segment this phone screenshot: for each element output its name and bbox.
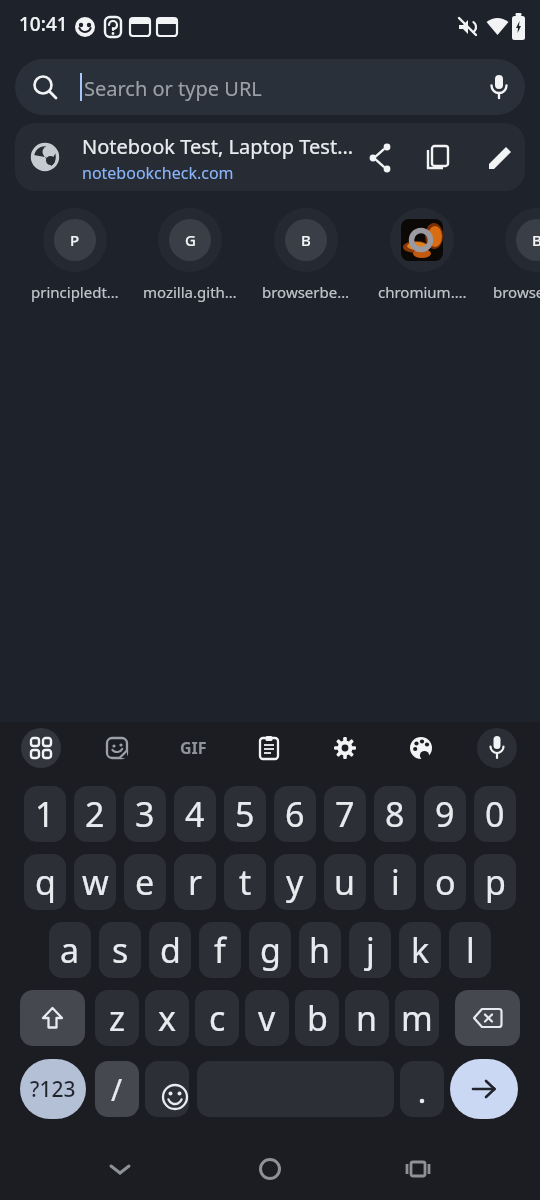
- button[interactable]: [394, 1145, 442, 1193]
- button[interactable]: v: [245, 990, 289, 1046]
- button[interactable]: f: [199, 922, 241, 978]
- button[interactable]: 7: [324, 786, 366, 842]
- staticText: 3: [135, 791, 155, 837]
- staticText: e: [135, 859, 155, 905]
- staticText: y: [286, 859, 304, 905]
- button[interactable]: s: [99, 922, 141, 978]
- staticText: f: [214, 927, 226, 973]
- staticText: principledt…: [31, 282, 119, 302]
- staticText: 6: [285, 791, 305, 837]
- staticText: 7: [335, 791, 355, 837]
- button[interactable]: ?123: [20, 1059, 86, 1119]
- staticText: P: [70, 230, 80, 250]
- button[interactable]: P: [18, 208, 132, 308]
- staticText: v: [258, 995, 276, 1041]
- button[interactable]: Search or type URL: [15, 59, 525, 115]
- button[interactable]: n: [345, 990, 389, 1046]
- button[interactable]: 2: [74, 786, 116, 842]
- button[interactable]: [455, 990, 520, 1046]
- button[interactable]: e: [124, 854, 166, 910]
- button[interactable]: k: [399, 922, 441, 978]
- button[interactable]: z: [95, 990, 139, 1046]
- button[interactable]: c: [195, 990, 239, 1046]
- button[interactable]: i: [374, 854, 416, 910]
- button[interactable]: [418, 138, 458, 178]
- staticText: u: [334, 859, 356, 905]
- button[interactable]: u: [324, 854, 366, 910]
- staticText: n: [356, 995, 378, 1041]
- button[interactable]: [480, 138, 520, 178]
- button[interactable]: [96, 1145, 144, 1193]
- button[interactable]: B: [249, 208, 363, 308]
- button[interactable]: /: [95, 1061, 139, 1117]
- button[interactable]: j: [349, 922, 391, 978]
- button[interactable]: 9: [424, 786, 466, 842]
- button[interactable]: o: [424, 854, 466, 910]
- button[interactable]: 8: [374, 786, 416, 842]
- button[interactable]: [400, 1061, 444, 1117]
- button[interactable]: 3: [124, 786, 166, 842]
- button[interactable]: 0: [474, 786, 516, 842]
- button[interactable]: m: [395, 990, 439, 1046]
- staticText: s: [112, 927, 129, 973]
- button[interactable]: chromium….: [365, 208, 479, 308]
- button[interactable]: 4: [174, 786, 216, 842]
- button[interactable]: r: [174, 854, 216, 910]
- staticText: mozilla.gith…: [143, 282, 237, 302]
- button[interactable]: l: [449, 922, 491, 978]
- staticText: i: [391, 859, 400, 905]
- staticText: chromium….: [378, 282, 467, 302]
- staticText: q: [35, 859, 56, 905]
- button[interactable]: t: [224, 854, 266, 910]
- button[interactable]: x: [145, 990, 189, 1046]
- staticText: 10:41: [19, 11, 68, 37]
- staticText: j: [366, 927, 375, 973]
- button[interactable]: [20, 990, 85, 1046]
- button[interactable]: p: [474, 854, 516, 910]
- staticText: Search or type URL: [84, 75, 262, 102]
- staticText: 4: [185, 791, 205, 837]
- staticText: o: [435, 859, 456, 905]
- button[interactable]: q: [24, 854, 66, 910]
- button[interactable]: h: [299, 922, 341, 978]
- button[interactable]: G: [133, 208, 247, 308]
- staticText: 5: [235, 791, 255, 837]
- staticText: h: [309, 927, 331, 973]
- button[interactable]: [325, 728, 365, 768]
- button[interactable]: b: [295, 990, 339, 1046]
- button[interactable]: [450, 1059, 518, 1119]
- staticText: b: [307, 995, 328, 1041]
- button[interactable]: a: [49, 922, 91, 978]
- staticText: B: [301, 230, 311, 250]
- staticText: browserbe…: [262, 282, 350, 302]
- button[interactable]: [401, 728, 441, 768]
- button[interactable]: [249, 728, 289, 768]
- staticText: k: [411, 927, 430, 973]
- button[interactable]: 6: [274, 786, 316, 842]
- button[interactable]: 5: [224, 786, 266, 842]
- staticText: 9: [435, 791, 455, 837]
- button[interactable]: [361, 138, 401, 178]
- staticText: m: [401, 995, 433, 1041]
- staticText: t: [239, 859, 252, 905]
- button[interactable]: GIF: [169, 728, 217, 768]
- button[interactable]: Notebook Test, Laptop Test…: [15, 123, 525, 191]
- button[interactable]: 1: [24, 786, 66, 842]
- button[interactable]: B: [480, 208, 540, 308]
- button[interactable]: g: [249, 922, 291, 978]
- button[interactable]: [145, 1061, 189, 1117]
- button[interactable]: [246, 1145, 294, 1193]
- staticText: GIF: [180, 737, 207, 759]
- button[interactable]: [97, 728, 137, 768]
- staticText: 2: [85, 791, 105, 837]
- staticText: g: [260, 927, 281, 973]
- button[interactable]: w: [74, 854, 116, 910]
- button[interactable]: [477, 728, 517, 768]
- button[interactable]: d: [149, 922, 191, 978]
- button[interactable]: y: [274, 854, 316, 910]
- button[interactable]: [21, 728, 61, 768]
- staticText: c: [209, 995, 226, 1041]
- staticText: r: [188, 859, 203, 905]
- staticText: G: [185, 230, 196, 250]
